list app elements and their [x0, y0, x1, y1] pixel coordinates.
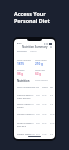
staticText: 24 g [50, 122, 55, 125]
staticText: Personal Diet [14, 17, 50, 24]
staticText: Nutrition [17, 79, 30, 83]
button[interactable]: Breakfast [17, 50, 37, 53]
staticText: 210 g [35, 62, 44, 66]
button[interactable]: Grilled Salmon with Rice [14, 122, 55, 130]
staticText: 36 g [42, 122, 47, 125]
staticText: Grilled Salmon with Rice [17, 122, 32, 128]
staticText: Lunch [30, 50, 37, 53]
staticText: Access Your [14, 10, 46, 17]
staticText: 150 g [28, 103, 34, 106]
button[interactable]: Greek Yogurt Parfait [14, 103, 55, 111]
staticText: 14 g [42, 133, 47, 136]
staticText: Greek Yogurt Parfait [17, 103, 30, 109]
staticText: Protein [17, 69, 25, 72]
button[interactable]: Protein Shake [14, 133, 55, 139]
staticText: 9:41 [17, 42, 22, 45]
staticText: 1 bowl [28, 113, 35, 116]
staticText: 320 [36, 94, 40, 97]
staticText: 1875 [17, 62, 25, 66]
staticText: Nutrition Summary [22, 45, 48, 49]
staticText: 4 g [50, 103, 54, 106]
staticText: 12 g [42, 103, 47, 106]
staticText: Fat [50, 86, 54, 89]
staticText: 180 [36, 103, 40, 106]
staticText: Protein Shake [17, 133, 31, 136]
staticText: Chicken Salad [17, 113, 31, 116]
staticText: Oatmeal with Fresh Banana [17, 94, 31, 100]
button[interactable]: More options [49, 45, 52, 48]
staticText: Total Carbs [35, 59, 47, 62]
button[interactable]: Chicken Salad [14, 113, 55, 121]
staticText: Total Fats [35, 69, 45, 72]
staticText: Carbs [42, 86, 48, 89]
staticText: Food Name [17, 86, 29, 89]
staticText: 350 ml [28, 133, 35, 136]
staticText: 22 g [50, 113, 55, 116]
staticText: 3 g [50, 133, 54, 136]
staticText: 62 g [35, 72, 42, 76]
staticText: 1 cup [28, 94, 34, 97]
staticText: 210 [36, 133, 40, 136]
button[interactable]: Oatmeal with Fresh Banana [14, 94, 55, 102]
staticText: 430 [36, 113, 40, 116]
staticText: 98 g [17, 72, 24, 76]
staticText: Serving [28, 86, 36, 89]
staticText: 8 g [50, 94, 54, 97]
staticText: 18 g [42, 113, 47, 116]
staticText: show details [35, 79, 48, 82]
staticText: Breakfast [17, 50, 27, 53]
staticText: 200 g [28, 122, 34, 125]
staticText: Cal [36, 86, 40, 89]
staticText: 42 g [42, 94, 47, 97]
staticText: Total Calories [17, 59, 31, 62]
staticText: 520 [36, 122, 40, 125]
